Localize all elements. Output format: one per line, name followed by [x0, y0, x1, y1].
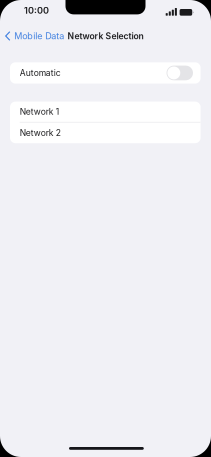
- button[interactable]: Automatic: [10, 62, 201, 84]
- staticText: Automatic: [20, 68, 61, 78]
- button[interactable]: Mobile Data: [0, 27, 75, 45]
- staticText: Mobile Data: [14, 31, 64, 41]
- staticText: Network Selection: [67, 31, 143, 41]
- staticText: 10:00: [24, 5, 49, 16]
- staticText: Network 2: [20, 128, 61, 138]
- button[interactable]: Network 1: [10, 102, 201, 122]
- staticText: Network 1: [20, 107, 59, 117]
- button[interactable]: Network 2: [10, 122, 201, 143]
